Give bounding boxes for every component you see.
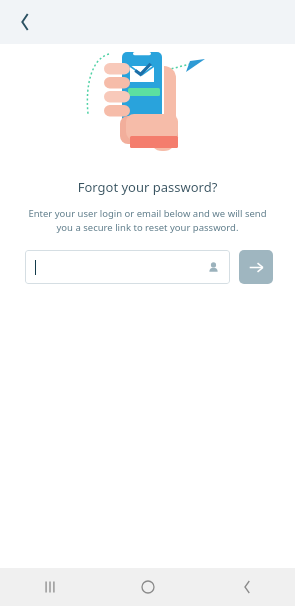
button[interactable]: Back <box>197 568 295 606</box>
staticText: Forgot your password? <box>0 178 295 196</box>
button[interactable] <box>25 250 230 284</box>
button[interactable]: Recent apps <box>0 568 99 606</box>
staticText: Enter your user login or email below and… <box>22 207 273 234</box>
button[interactable]: Home <box>99 568 197 606</box>
button[interactable]: Back <box>8 5 42 39</box>
button[interactable]: Submit <box>239 250 273 284</box>
